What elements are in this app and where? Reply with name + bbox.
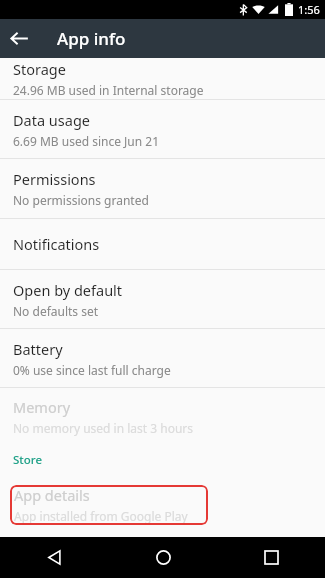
button[interactable]: Home (109, 537, 217, 578)
button[interactable]: Permissions (0, 159, 325, 218)
staticText: 0% use since last full charge (13, 362, 171, 378)
button[interactable]: Open by default (0, 270, 325, 328)
staticText: Data usage (13, 110, 90, 130)
staticText: No defaults set (13, 303, 99, 319)
button[interactable]: Back (0, 537, 109, 578)
button[interactable]: Notifications (0, 219, 325, 269)
button[interactable]: Battery (0, 329, 325, 387)
staticText: App installed from Google Play Store (14, 508, 208, 525)
staticText: App info (57, 27, 126, 50)
staticText: No permissions granted (13, 192, 149, 208)
staticText: Storage (13, 59, 66, 79)
staticText: Open by default (13, 280, 123, 300)
staticText: 24.96 MB used in Internal storage (13, 82, 204, 98)
staticText: Store (13, 452, 42, 468)
staticText: No memory used in last 3 hours (13, 420, 194, 436)
staticText: 6.69 MB used since Jun 21 (13, 133, 160, 149)
button[interactable]: Back (0, 19, 39, 58)
button[interactable]: Storage (0, 58, 325, 99)
button[interactable]: Memory (0, 388, 325, 444)
staticText: Notifications (13, 234, 100, 254)
button[interactable]: Recent apps (217, 537, 325, 578)
staticText: 1:56 (298, 2, 320, 17)
button[interactable]: App details (10, 485, 208, 525)
staticText: Permissions (13, 169, 96, 189)
button[interactable]: Data usage (0, 100, 325, 158)
staticText: Memory (13, 397, 71, 417)
staticText: Battery (13, 339, 63, 359)
staticText: App details (14, 485, 90, 505)
